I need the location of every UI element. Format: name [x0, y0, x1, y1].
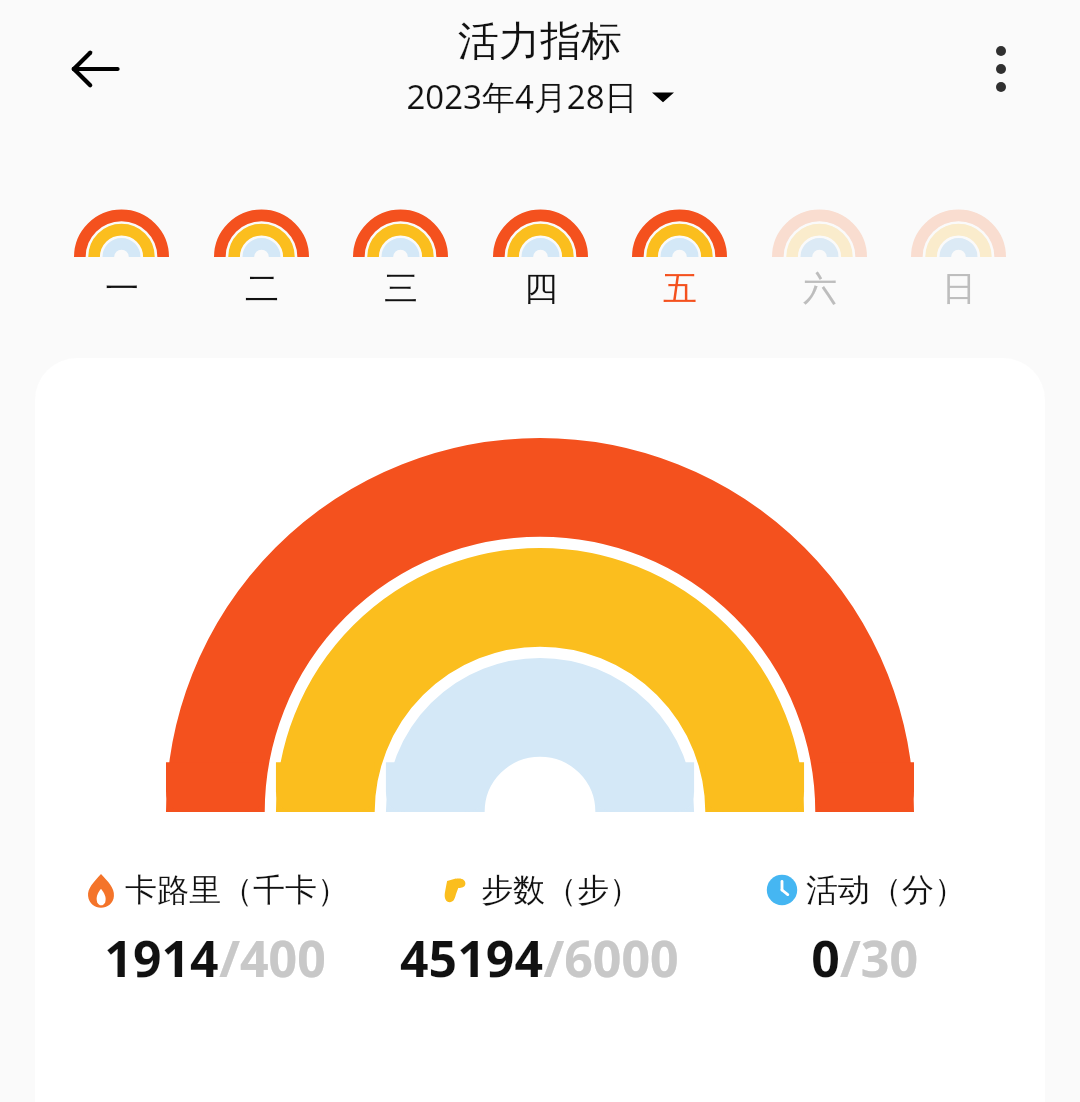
staticText: /30	[840, 924, 918, 992]
button[interactable]: 活动（分）	[702, 870, 1027, 992]
staticText: 45194	[400, 924, 543, 992]
staticText: 活力指标	[458, 16, 622, 68]
staticText: 1914	[104, 924, 219, 992]
button[interactable]: 步数（步）	[377, 870, 702, 992]
button[interactable]: 卡路里（千卡）	[53, 870, 377, 992]
button[interactable]: 五	[632, 207, 727, 310]
staticText: 二	[245, 267, 279, 310]
button[interactable]: 四	[493, 207, 588, 310]
staticText: 卡路里（千卡）	[125, 870, 349, 910]
button[interactable]: 三	[353, 207, 448, 310]
button[interactable]: 一	[74, 207, 169, 310]
button[interactable]: More options	[966, 34, 1036, 104]
staticText: 四	[524, 267, 558, 310]
button[interactable]: 日	[911, 207, 1006, 310]
button[interactable]: Back	[56, 30, 134, 108]
staticText: 步数（步）	[481, 870, 641, 910]
staticText: 三	[384, 267, 418, 310]
staticText: 活动（分）	[806, 870, 966, 910]
staticText: 一	[105, 267, 139, 310]
staticText: 0	[811, 924, 840, 992]
staticText: 2023年4月28日	[406, 74, 638, 119]
button[interactable]: 六	[772, 207, 867, 310]
button[interactable]: 二	[214, 207, 309, 310]
staticText: 六	[803, 267, 837, 310]
staticText: /400	[219, 924, 326, 992]
button[interactable]: 2023年4月28日	[406, 74, 674, 119]
staticText: /6000	[543, 924, 679, 992]
staticText: 日	[942, 267, 976, 310]
staticText: 五	[663, 267, 697, 310]
